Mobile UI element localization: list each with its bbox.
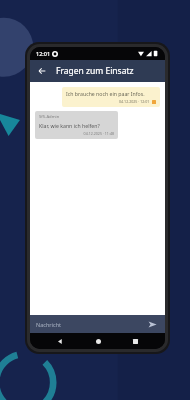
- button[interactable]: Nachricht: [36, 315, 145, 333]
- staticText: Klar, wie kann ich helfen?: [39, 122, 100, 129]
- button[interactable]: Recent apps: [128, 334, 142, 348]
- staticText: 12:01: [36, 50, 51, 57]
- staticText: Ich brauche noch ein paar Infos.: [66, 90, 145, 97]
- button[interactable]: Back: [34, 63, 50, 79]
- button[interactable]: Home: [91, 334, 105, 348]
- staticText: Nachricht: [36, 321, 62, 328]
- button[interactable]: SfS-Admin: [35, 111, 118, 139]
- staticText: Fragen zum Einsatz: [56, 65, 134, 77]
- button[interactable]: Send: [145, 317, 159, 331]
- button[interactable]: Ich brauche noch ein paar Infos.: [62, 87, 160, 107]
- staticText: 04.12.2025 · 11:48: [39, 131, 114, 136]
- staticText: SfS-Admin: [39, 114, 60, 120]
- staticText: 04.12.2025 · 12:01: [119, 99, 150, 104]
- button[interactable]: Back: [53, 334, 67, 348]
